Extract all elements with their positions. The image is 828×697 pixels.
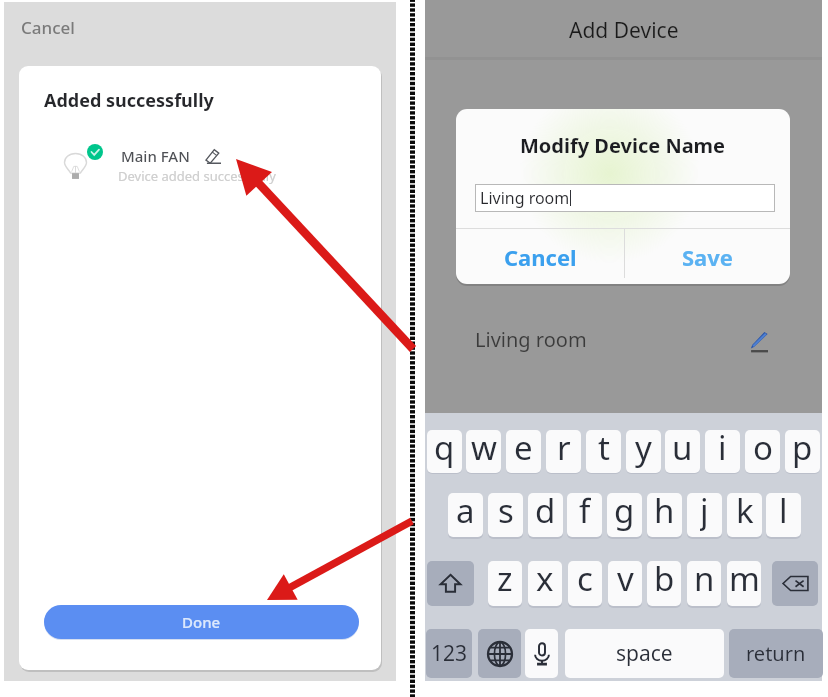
staticText: Save (682, 242, 733, 272)
staticText: Device added successfully (118, 167, 276, 185)
button[interactable]: x (528, 561, 562, 606)
staticText: i (718, 430, 727, 468)
staticText: Cancel (504, 242, 577, 272)
staticText: y (635, 430, 652, 468)
other: Rename (205, 148, 221, 164)
button[interactable]: Main FAN (121, 146, 221, 166)
staticText: b (654, 561, 675, 601)
button[interactable]: Backspace (772, 561, 818, 606)
staticText: p (792, 430, 813, 468)
staticText: a (456, 493, 475, 532)
button[interactable]: b (647, 561, 681, 606)
button[interactable]: h (647, 493, 682, 537)
button[interactable]: w (466, 430, 501, 473)
button[interactable]: a (448, 493, 483, 537)
button[interactable]: u (665, 430, 700, 473)
staticText: z (497, 561, 513, 601)
staticText: Done (182, 612, 221, 632)
button[interactable]: Cancel (21, 16, 75, 39)
button[interactable]: v (608, 561, 642, 606)
other: Edit device name (750, 332, 768, 353)
button[interactable]: z (488, 561, 522, 606)
staticText: j (700, 493, 709, 532)
button[interactable]: e (506, 430, 541, 473)
button[interactable]: n (687, 561, 721, 606)
staticText: m (729, 561, 760, 601)
staticText: l (779, 493, 788, 532)
staticText: 123 (431, 639, 468, 668)
staticText: g (614, 493, 635, 532)
button[interactable]: space (565, 629, 724, 678)
staticText: q (434, 430, 455, 468)
button[interactable]: c (568, 561, 602, 606)
staticText: t (598, 430, 610, 468)
button[interactable]: 123 (426, 629, 472, 678)
staticText: Living room (480, 187, 570, 209)
button[interactable]: r (546, 430, 581, 473)
button[interactable]: o (745, 430, 780, 473)
staticText: Add Device (569, 16, 679, 45)
button[interactable]: Cancel (456, 229, 624, 284)
staticText: w (471, 430, 497, 468)
staticText: o (753, 430, 773, 468)
button[interactable]: g (607, 493, 642, 537)
button[interactable]: Living room (475, 313, 770, 365)
staticText: u (672, 430, 693, 468)
staticText: space (616, 639, 673, 668)
button[interactable]: p (785, 430, 820, 473)
button[interactable]: d (528, 493, 563, 537)
button[interactable]: f (567, 493, 602, 537)
staticText: Living room (475, 326, 587, 353)
button[interactable]: j (687, 493, 722, 537)
button[interactable]: q (427, 430, 462, 473)
staticText: k (736, 493, 754, 532)
button[interactable]: k (727, 493, 762, 537)
button[interactable]: Save (625, 229, 790, 284)
staticText: Main FAN (121, 146, 190, 166)
staticText: h (654, 493, 675, 532)
staticText: e (514, 430, 533, 468)
button[interactable]: Dictate (525, 629, 558, 678)
staticText: Modify Device Name (520, 132, 726, 159)
staticText: s (498, 493, 514, 532)
staticText: Added successfully (44, 88, 214, 113)
staticText: n (694, 561, 715, 601)
button[interactable]: Done (44, 605, 359, 639)
staticText: x (536, 561, 554, 601)
button[interactable]: l (766, 493, 801, 537)
button[interactable]: Shift (427, 561, 474, 606)
staticText: d (535, 493, 556, 532)
button[interactable]: i (705, 430, 740, 473)
staticText: f (579, 493, 591, 532)
staticText: c (577, 561, 593, 601)
button[interactable]: Switch keyboard (478, 629, 521, 678)
button[interactable]: y (626, 430, 661, 473)
staticText: r (557, 430, 571, 468)
button[interactable]: m (727, 561, 761, 606)
button[interactable]: t (586, 430, 621, 473)
button[interactable]: s (488, 493, 523, 537)
staticText: v (617, 561, 634, 601)
staticText: return (746, 640, 806, 667)
button[interactable]: return (729, 629, 823, 678)
